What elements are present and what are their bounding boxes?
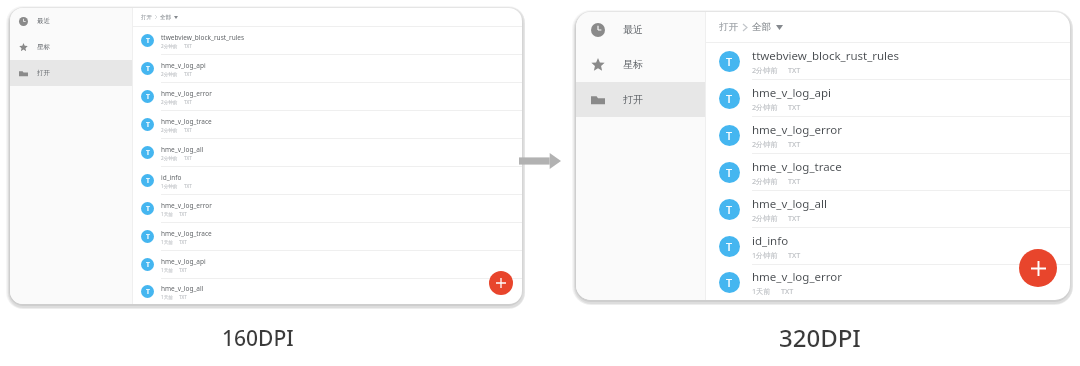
staticText: hme_v_log_all [161,284,204,293]
staticText: TXT [788,139,801,149]
button[interactable]: T [706,80,1070,117]
staticText: 1天前 [161,211,173,217]
staticText: ttwebview_block_rust_rules [161,33,245,42]
staticText: hme_v_log_trace [161,117,212,126]
staticText: TXT [184,127,192,133]
staticText: TXT [788,65,801,75]
staticText: T [146,36,150,46]
staticText: hme_v_log_trace [161,229,212,238]
button[interactable]: 最近 [576,12,705,47]
staticText: T [726,91,733,106]
button[interactable]: 星标 [10,34,132,60]
staticText: hme_v_log_api [161,61,206,70]
staticText: T [726,54,733,69]
staticText: hme_v_log_error [752,122,842,138]
button[interactable]: T [706,191,1070,228]
staticText: 2分钟前 [752,139,778,149]
staticText: 2分钟前 [161,127,178,133]
staticText: 星标 [623,58,643,71]
staticText: T [726,165,733,180]
staticText: hme_v_log_all [161,145,204,154]
staticText: id_info [752,233,789,249]
staticText: ttwebview_block_rust_rules [752,48,900,64]
staticText: 全部 [160,14,171,21]
staticText: T [146,92,150,102]
staticText: T [146,148,150,158]
staticText: 2分钟前 [161,155,178,161]
staticText: TXT [184,99,192,105]
staticText: TXT [788,102,801,112]
staticText: 1分钟前 [752,250,778,260]
staticText: 320DPI [779,321,861,354]
staticText: T [726,202,733,217]
staticText: 全部 [752,21,771,33]
button[interactable]: 打开 [576,82,705,117]
staticText: 2分钟前 [161,71,178,77]
staticText: hme_v_log_error [161,201,212,210]
button[interactable]: 打开 [719,21,738,33]
button[interactable]: Add [1019,249,1057,287]
button[interactable]: T [706,228,1070,265]
staticText: 160DPI [222,324,294,353]
button[interactable]: 全部 [160,14,178,21]
staticText: 最近 [37,17,50,25]
button[interactable]: T [706,117,1070,154]
staticText: 1天前 [752,286,771,296]
staticText: 2分钟前 [752,213,778,223]
button[interactable]: 打开 [141,14,152,21]
staticText: T [146,64,150,74]
staticText: 2分钟前 [752,102,778,112]
button[interactable]: T [133,139,522,167]
staticText: TXT [788,213,801,223]
button[interactable]: T [133,83,522,111]
staticText: TXT [179,294,187,300]
staticText: 打开 [719,21,738,33]
staticText: T [146,260,150,270]
button[interactable]: T [706,43,1070,80]
button[interactable]: T [133,223,522,251]
staticText: T [726,128,733,143]
button[interactable]: T [133,279,522,304]
button[interactable]: T [133,27,522,55]
staticText: TXT [184,183,192,189]
staticText: TXT [179,267,187,273]
button[interactable]: T [706,265,1070,300]
staticText: 1天前 [161,239,173,245]
button[interactable]: 全部 [752,21,783,33]
button[interactable]: 最近 [10,8,132,34]
staticText: TXT [179,211,187,217]
button[interactable]: T [133,55,522,83]
staticText: 打开 [141,14,152,21]
staticText: 2分钟前 [161,99,178,105]
staticText: T [146,120,150,130]
staticText: T [146,287,150,297]
staticText: hme_v_log_error [752,269,842,285]
button[interactable]: 打开 [10,60,132,86]
staticText: TXT [184,43,192,49]
staticText: hme_v_log_api [752,85,831,101]
button[interactable]: T [133,195,522,223]
staticText: 打开 [623,93,643,106]
staticText: hme_v_log_error [161,89,212,98]
staticText: 2分钟前 [752,65,778,75]
staticText: hme_v_log_all [752,196,827,212]
button[interactable]: T [706,154,1070,191]
staticText: hme_v_log_api [161,257,206,266]
staticText: TXT [184,155,192,161]
staticText: T [146,176,150,186]
staticText: 2分钟前 [161,43,178,49]
staticText: 最近 [623,23,643,36]
button[interactable]: T [133,251,522,279]
button[interactable]: 星标 [576,47,705,82]
staticText: T [726,275,733,290]
staticText: 星标 [37,43,50,51]
staticText: T [146,232,150,242]
button[interactable]: T [133,167,522,195]
staticText: TXT [179,239,187,245]
button[interactable]: T [133,111,522,139]
staticText: 打开 [37,69,50,77]
staticText: 1天前 [161,267,173,273]
staticText: 2分钟前 [752,176,778,186]
staticText: 1分钟前 [161,183,178,189]
button[interactable]: Add [489,271,513,295]
